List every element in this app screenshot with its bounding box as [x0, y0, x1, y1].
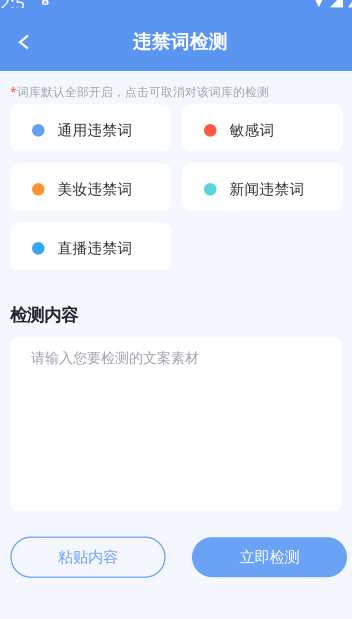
staticText: 检测内容: [10, 304, 78, 326]
button[interactable]: 直播违禁词: [10, 222, 171, 269]
staticText: 词库默认全部开启，点击可取消对该词库的检测: [17, 85, 269, 100]
staticText: 2:59: [0, 0, 25, 38]
staticText: 请输入您要检测的文案素材: [31, 349, 199, 367]
button[interactable]: 通用违禁词: [10, 104, 171, 151]
staticText: A: [43, 0, 47, 6]
button[interactable]: 粘贴内容: [11, 537, 165, 577]
button[interactable]: 新闻违禁词: [182, 163, 343, 210]
staticText: *: [10, 84, 17, 100]
staticText: 敏感词: [229, 121, 274, 140]
staticText: 新闻违禁词: [229, 180, 304, 199]
button[interactable]: Back: [6, 22, 42, 62]
button[interactable]: 敏感词: [182, 104, 343, 151]
staticText: 通用违禁词: [57, 121, 132, 140]
staticText: 立即检测: [239, 547, 299, 567]
button[interactable]: 立即检测: [192, 537, 347, 577]
staticText: 违禁词检测: [132, 30, 227, 54]
staticText: 美妆违禁词: [57, 180, 132, 199]
staticText: 直播违禁词: [57, 239, 132, 258]
button[interactable]: 美妆违禁词: [10, 163, 171, 210]
staticText: 粘贴内容: [58, 547, 118, 567]
